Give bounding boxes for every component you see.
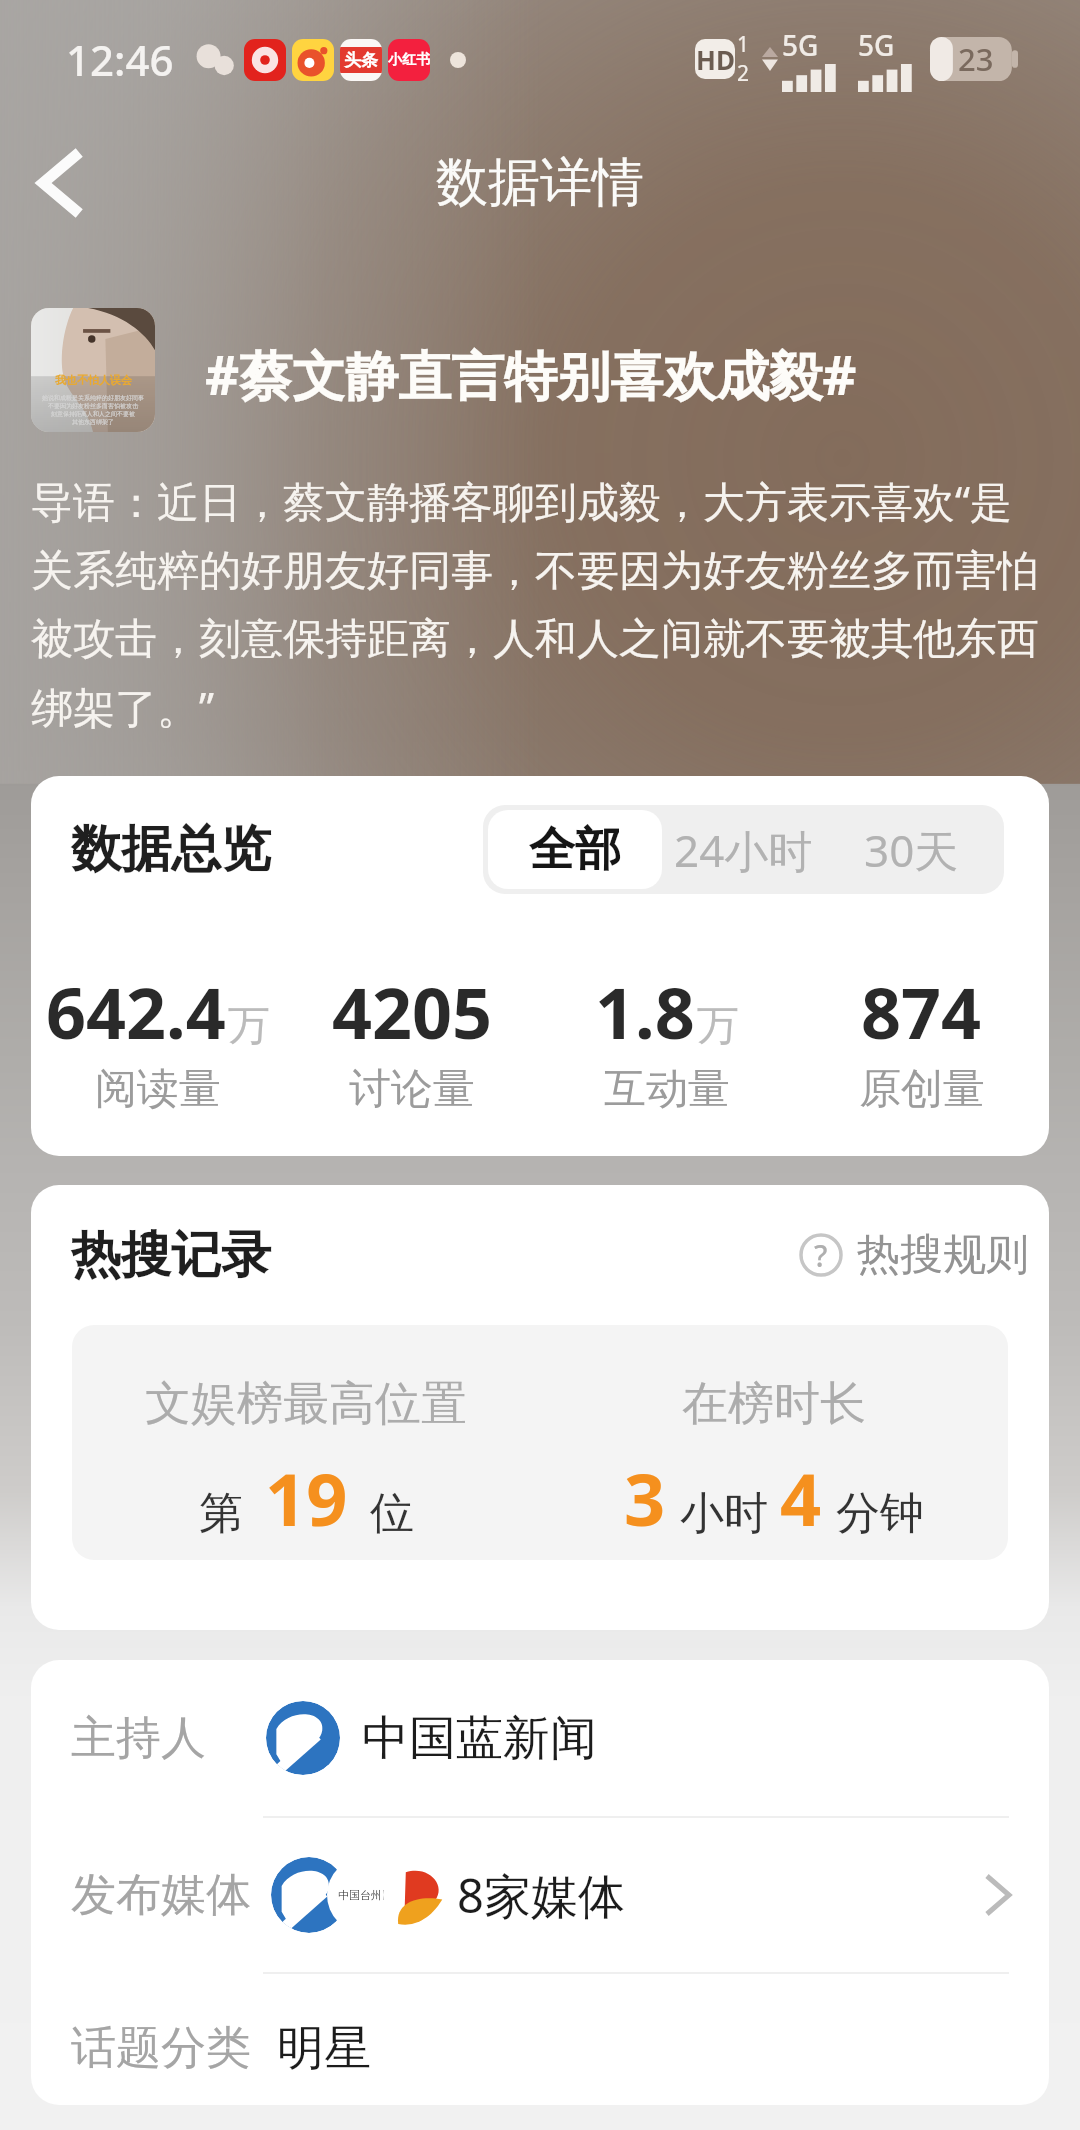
staticText: 小时 xyxy=(680,1486,768,1541)
staticText: 主持人 xyxy=(71,1710,206,1767)
staticText: 位 xyxy=(370,1486,414,1541)
staticText: 我也不怕人误会 xyxy=(55,373,132,387)
staticText: 原创量 xyxy=(859,1063,985,1116)
staticText: 分钟 xyxy=(836,1486,924,1541)
staticText: 1 xyxy=(737,30,750,59)
staticText: 全部 xyxy=(529,821,621,879)
staticText: 她说和成毅是关系纯粹的好朋友好同事 不要因为好友粉丝多而害怕被攻击 刻意保持距离… xyxy=(42,394,144,426)
staticText: 2 xyxy=(737,59,750,88)
staticText: HD xyxy=(696,42,735,77)
staticText: 5G xyxy=(782,26,819,64)
staticText: 642.4 xyxy=(46,964,226,1059)
button[interactable]: ? xyxy=(783,1216,1049,1294)
staticText: 小红书 xyxy=(388,51,430,69)
staticText: 12:46 xyxy=(66,31,174,88)
staticText: 在榜时长 xyxy=(682,1375,866,1433)
button[interactable]: 话题分类 xyxy=(31,1974,1049,2105)
staticText: 发布媒体 xyxy=(71,1867,251,1924)
button[interactable]: 发布媒体 xyxy=(31,1818,1049,1972)
staticText: 24小时 xyxy=(674,820,813,880)
staticText: 导语：近日，蔡文静播客聊到成毅，大方表示喜欢“是 关系纯粹的好朋友好同事，不要因… xyxy=(31,472,1060,736)
staticText: 互动量 xyxy=(604,1063,730,1116)
staticText: 热搜记录 xyxy=(71,1224,271,1287)
button[interactable]: 30天 xyxy=(819,805,1004,894)
staticText: 30天 xyxy=(864,820,959,880)
button[interactable]: 主持人 xyxy=(31,1660,1049,1816)
staticText: 4 xyxy=(780,1449,822,1547)
staticText: 8家媒体 xyxy=(457,1863,625,1927)
staticText: 中国蓝新闻 xyxy=(362,1709,597,1768)
staticText: 热搜规则 xyxy=(857,1228,1029,1282)
staticText: 19 xyxy=(265,1449,348,1547)
staticText: 文娱榜最高位置 xyxy=(145,1375,467,1433)
button[interactable]: 24小时 xyxy=(667,805,819,894)
staticText: 讨论量 xyxy=(349,1063,475,1116)
staticText: 头条 xyxy=(344,50,378,71)
staticText: 万 xyxy=(228,1000,270,1053)
staticText: 阅读量 xyxy=(95,1063,221,1116)
staticText: 1.8 xyxy=(595,964,695,1059)
staticText: 话题分类 xyxy=(71,2020,251,2077)
staticText: #蔡文静直言特别喜欢成毅# xyxy=(205,338,857,410)
staticText: 5G xyxy=(858,26,895,64)
staticText: 23 xyxy=(958,38,994,80)
staticText: 万 xyxy=(697,1000,739,1053)
staticText: 3 xyxy=(624,1449,666,1547)
staticText: ? xyxy=(814,1235,828,1276)
staticText: 数据总览 xyxy=(71,818,271,881)
staticText: 中国台州网 xyxy=(338,1888,393,1902)
staticText: 4205 xyxy=(332,964,493,1059)
button[interactable]: Back xyxy=(12,136,106,230)
button[interactable]: 全部 xyxy=(488,810,662,889)
staticText: 第 xyxy=(199,1486,243,1541)
staticText: 874 xyxy=(861,964,982,1059)
staticText: 数据详情 xyxy=(436,150,644,216)
staticText: 明星 xyxy=(277,2019,371,2078)
